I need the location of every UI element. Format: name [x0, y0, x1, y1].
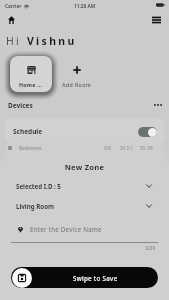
staticText: New Zone — [0, 162, 169, 172]
staticText: Swipe to Save — [73, 274, 118, 282]
button[interactable]: Schedule — [5, 118, 164, 143]
staticText: Add Room — [62, 81, 92, 88]
button[interactable]: Home ... — [10, 56, 52, 92]
staticText: Enter the Device Name — [30, 225, 102, 233]
staticText: Carrier — [5, 3, 22, 10]
staticText: 0/20 — [142, 245, 155, 251]
button[interactable]: Living Room — [0, 197, 169, 215]
staticText: Living Room — [16, 202, 55, 210]
staticText: Vishnu — [27, 34, 77, 48]
button[interactable]: Home — [4, 13, 18, 27]
staticText: 24.5 C — [120, 145, 134, 151]
staticText: ON — [104, 145, 112, 151]
staticText: 11:28 AM — [74, 3, 96, 10]
staticText: Devices — [8, 101, 33, 110]
staticText: Hi — [6, 34, 27, 48]
staticText: Selected I.D : 5 — [16, 182, 61, 190]
button[interactable]: More options — [151, 98, 165, 112]
button[interactable]: Add Room — [58, 66, 95, 88]
staticText: Bedroom — [19, 145, 42, 152]
staticText: 55.1% — [140, 145, 154, 151]
button[interactable]: Schedule toggle — [138, 127, 157, 137]
button[interactable]: Enter the Device Name — [0, 220, 169, 238]
staticText: Schedule — [13, 127, 43, 136]
button[interactable]: Menu — [149, 13, 163, 27]
button[interactable]: Swipe to Save — [11, 267, 158, 288]
staticText: Home ... — [19, 81, 43, 88]
button[interactable]: Selected I.D : 5 — [0, 177, 169, 195]
